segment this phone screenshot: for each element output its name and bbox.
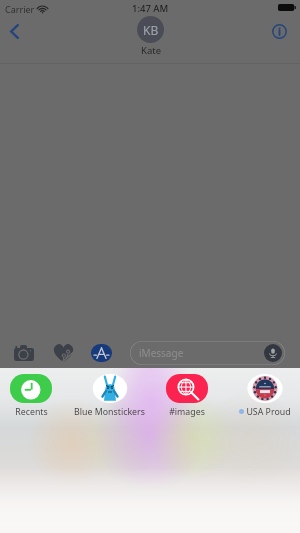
button[interactable]: Camera — [12, 340, 36, 365]
staticText: 1:47 AM — [132, 2, 169, 15]
staticText: Carrier — [5, 3, 35, 15]
staticText: USA Proud — [246, 406, 291, 417]
button[interactable]: App Store — [89, 340, 114, 366]
button[interactable]: Dictate — [264, 344, 282, 362]
button[interactable]: #images — [149, 372, 225, 417]
button[interactable]: Blue Monstickers — [71, 372, 147, 417]
staticText: Recents — [15, 406, 48, 417]
staticText: Blue Monstickers — [74, 406, 145, 417]
button[interactable]: Details — [267, 19, 291, 43]
button[interactable]: iMessage — [130, 341, 285, 365]
button[interactable]: Recents — [0, 372, 69, 417]
button[interactable]: Digital Touch — [50, 340, 76, 366]
staticText: #images — [169, 406, 205, 417]
staticText: iMessage — [139, 346, 184, 360]
staticText: Kate — [141, 44, 161, 57]
staticText: KB — [143, 22, 159, 38]
button[interactable]: KB — [137, 16, 164, 57]
button[interactable]: Back — [2, 16, 26, 47]
button[interactable]: USA Proud — [227, 372, 300, 417]
